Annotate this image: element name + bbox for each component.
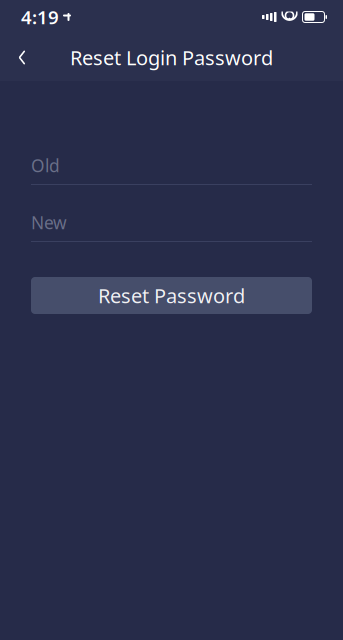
- staticText: Reset Login Password: [70, 44, 273, 71]
- staticText: Reset Password: [98, 282, 245, 309]
- button[interactable]: Reset Password: [31, 277, 312, 314]
- staticText: New: [31, 211, 67, 234]
- staticText: 4:19: [21, 5, 59, 29]
- button[interactable]: Back: [0, 35, 44, 79]
- staticText: Old: [31, 154, 60, 177]
